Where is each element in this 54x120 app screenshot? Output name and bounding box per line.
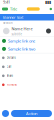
button[interactable]: Remove — [0, 80, 54, 89]
staticText: Section — [3, 21, 13, 25]
staticText: Banner text — [3, 15, 23, 20]
button[interactable]: Sample link two — [0, 45, 54, 53]
staticText: subtitle — [11, 32, 22, 36]
staticText: Details — [7, 56, 16, 59]
button[interactable]: Sample link one — [0, 37, 54, 45]
staticText: 9:41 — [3, 0, 10, 5]
button[interactable]: Details — [0, 53, 54, 62]
staticText: Action — [26, 111, 37, 116]
button[interactable]: Name Here — [0, 25, 54, 36]
button[interactable]: Add — [2, 110, 9, 117]
button[interactable]: Share — [0, 71, 54, 80]
staticText: Title — [10, 6, 17, 12]
button[interactable]: Action — [11, 110, 52, 117]
staticText: Call — [7, 65, 12, 68]
staticText: Name Here — [11, 26, 32, 31]
staticText: Share — [7, 74, 14, 77]
staticText: ▮▮▮ — [45, 0, 51, 4]
staticText: Remove — [7, 83, 18, 86]
staticText: Sample link one — [8, 38, 35, 43]
button[interactable]: Call — [0, 62, 54, 71]
staticText: Sample link two — [8, 46, 35, 51]
